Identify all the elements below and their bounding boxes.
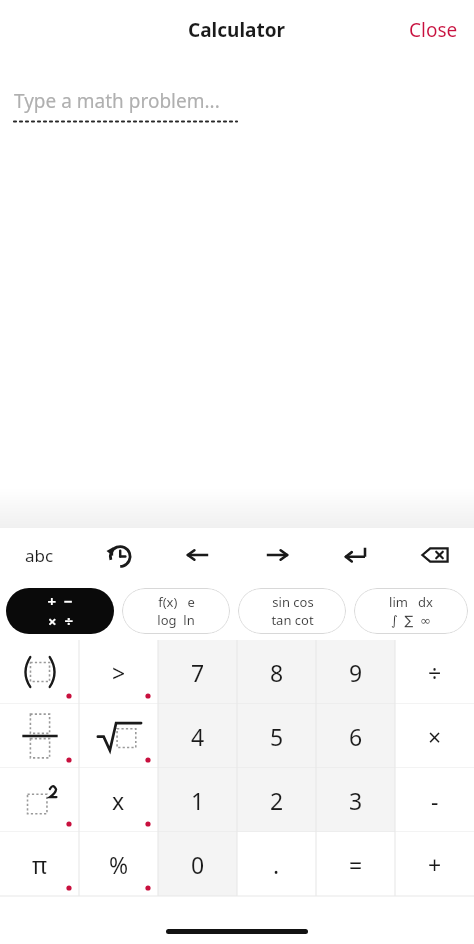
button[interactable]: π — [0, 832, 79, 896]
staticText: tan cot — [271, 611, 314, 629]
staticText: 7 — [191, 657, 205, 688]
staticText: lim dx — [389, 593, 433, 611]
button[interactable]: 0 — [158, 832, 237, 896]
staticText: Calculator — [188, 17, 286, 43]
button[interactable]: 7 — [158, 640, 237, 704]
button[interactable]: . — [237, 832, 316, 896]
button[interactable] — [0, 768, 79, 832]
button[interactable]: Move right — [237, 528, 316, 582]
staticText: × — [428, 721, 442, 752]
button[interactable]: - — [395, 768, 474, 832]
button[interactable]: x — [79, 768, 158, 832]
button[interactable]: ÷ — [395, 640, 474, 704]
staticText: ∫ ∑ ∞ — [391, 611, 431, 629]
staticText: - — [431, 785, 439, 816]
button[interactable]: = — [316, 832, 395, 896]
button[interactable]: History — [79, 528, 158, 582]
staticText: π — [32, 849, 48, 880]
staticText: ÷ — [428, 657, 442, 688]
staticText: 9 — [349, 657, 363, 688]
staticText: abc — [25, 544, 54, 567]
button[interactable]: 8 — [237, 640, 316, 704]
button[interactable]: 1 — [158, 768, 237, 832]
staticText: 6 — [349, 721, 363, 752]
staticText: 0 — [191, 849, 205, 880]
button[interactable] — [0, 640, 79, 704]
staticText: > — [112, 657, 126, 688]
button[interactable] — [79, 704, 158, 768]
staticText: x — [112, 785, 125, 816]
button[interactable]: 6 — [316, 704, 395, 768]
button[interactable]: Enter — [316, 528, 395, 582]
button[interactable]: Move left — [158, 528, 237, 582]
button[interactable]: 5 — [237, 704, 316, 768]
staticText: % — [109, 849, 129, 880]
staticText: sin cos — [272, 593, 314, 611]
staticText: = — [349, 849, 363, 880]
staticText: Type a math problem... — [14, 88, 220, 114]
button[interactable]: 3 — [316, 768, 395, 832]
staticText: × ÷ — [48, 611, 73, 631]
button[interactable]: lim dx — [354, 588, 468, 634]
staticText: 3 — [349, 785, 363, 816]
staticText: Close — [409, 17, 458, 43]
button[interactable]: Close — [393, 9, 474, 51]
button[interactable]: sin cos — [238, 588, 346, 634]
button[interactable]: > — [79, 640, 158, 704]
staticText: + − — [47, 591, 73, 611]
staticText: 2 — [270, 785, 284, 816]
button[interactable]: + − — [6, 588, 114, 634]
staticText: . — [273, 849, 280, 880]
button[interactable]: × — [395, 704, 474, 768]
staticText: 5 — [270, 721, 284, 752]
button[interactable]: + — [395, 832, 474, 896]
staticText: 1 — [191, 785, 205, 816]
button[interactable]: 4 — [158, 704, 237, 768]
button[interactable]: Backspace — [395, 528, 474, 582]
button[interactable]: abc — [0, 528, 79, 582]
button[interactable]: 9 — [316, 640, 395, 704]
button[interactable] — [0, 704, 79, 768]
staticText: f(x) e — [158, 593, 195, 611]
button[interactable]: 2 — [237, 768, 316, 832]
staticText: 4 — [191, 721, 205, 752]
staticText: log ln — [157, 611, 195, 629]
button[interactable]: % — [79, 832, 158, 896]
staticText: + — [428, 849, 442, 880]
staticText: 8 — [270, 657, 284, 688]
button[interactable]: f(x) e — [122, 588, 230, 634]
